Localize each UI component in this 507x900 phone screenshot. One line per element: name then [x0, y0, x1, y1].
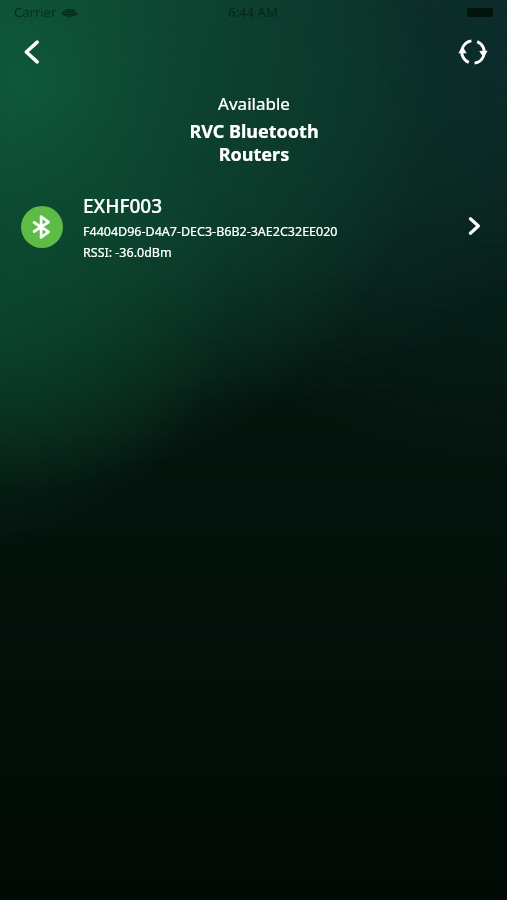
- staticText: Available: [218, 92, 290, 115]
- staticText: RSSI: -36.0dBm: [83, 244, 172, 261]
- staticText: RVC Bluetooth Routers: [189, 119, 319, 166]
- staticText: EXHF003: [83, 193, 163, 219]
- button[interactable]: Back: [8, 28, 56, 76]
- staticText: Carrier: [14, 3, 57, 21]
- staticText: 6:44 AM: [228, 3, 279, 21]
- staticText: F4404D96-D4A7-DEC3-B6B2-3AE2C32EE020: [83, 223, 338, 240]
- button[interactable]: Refresh: [449, 28, 497, 76]
- button[interactable]: EXHF003: [0, 190, 507, 264]
